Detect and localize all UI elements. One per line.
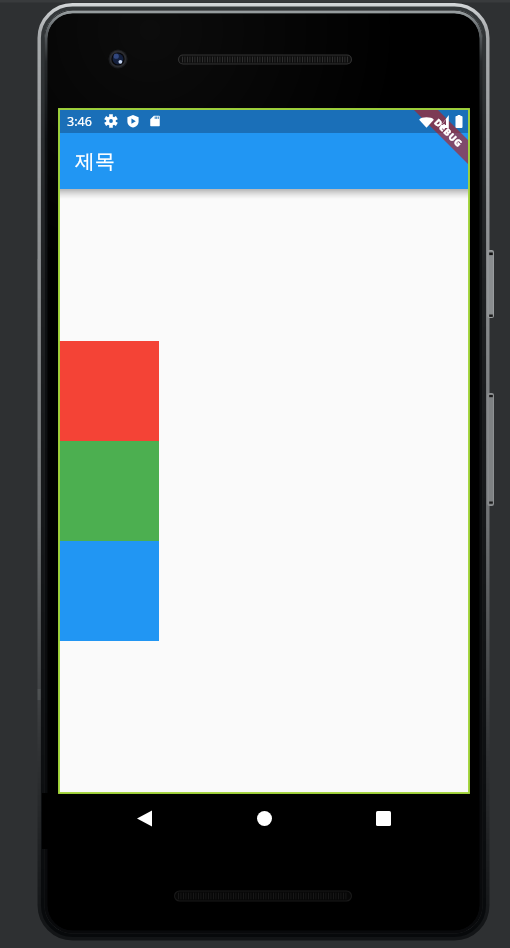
button[interactable]: Back <box>114 790 174 846</box>
staticText: 3:46 <box>67 113 92 130</box>
staticText: 제목 <box>75 149 115 174</box>
button[interactable] <box>59 541 159 641</box>
button[interactable]: Home <box>234 790 294 846</box>
staticText: DEBUG <box>431 116 466 151</box>
button[interactable] <box>59 341 159 441</box>
button[interactable]: 제목 <box>59 133 469 189</box>
button[interactable]: Recent apps <box>353 790 413 846</box>
button[interactable] <box>59 441 159 541</box>
